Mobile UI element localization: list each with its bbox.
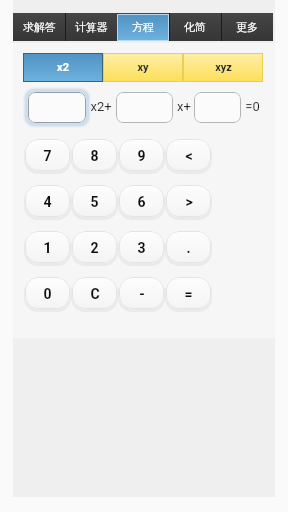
button[interactable]: xyz	[183, 53, 263, 82]
staticText: C	[90, 286, 100, 302]
staticText: 7	[43, 148, 52, 164]
button[interactable]	[28, 92, 86, 123]
button[interactable]: 计算器	[65, 13, 117, 41]
button[interactable]: 1	[25, 231, 70, 263]
staticText: =0	[245, 99, 260, 114]
button[interactable]: 化简	[169, 13, 221, 41]
button[interactable]	[194, 92, 241, 123]
button[interactable]: >	[166, 185, 211, 217]
button[interactable]: 3	[119, 231, 164, 263]
staticText: 计算器	[75, 20, 108, 34]
staticText: 更多	[236, 20, 258, 34]
staticText: 求解答	[23, 20, 56, 34]
button[interactable]: x2	[23, 53, 103, 82]
staticText: <	[185, 148, 193, 164]
button[interactable]: 5	[72, 185, 117, 217]
staticText: 4	[43, 194, 52, 210]
staticText: 1	[43, 240, 52, 256]
staticText: xyz	[215, 61, 232, 74]
button[interactable]: 6	[119, 185, 164, 217]
staticText: xy	[137, 61, 149, 74]
staticText: x2	[57, 61, 69, 74]
staticText: =	[184, 286, 193, 302]
staticText: 9	[137, 148, 146, 164]
staticText: .	[186, 240, 191, 256]
staticText: -	[139, 286, 145, 302]
button[interactable]: .	[166, 231, 211, 263]
button[interactable]: 2	[72, 231, 117, 263]
button[interactable]: 求解答	[13, 13, 65, 41]
button[interactable]: =	[166, 277, 211, 309]
button[interactable]: xy	[103, 53, 183, 82]
button[interactable]: 更多	[221, 13, 273, 41]
staticText: 5	[90, 194, 99, 210]
staticText: x+	[177, 99, 191, 114]
staticText: >	[185, 194, 193, 210]
staticText: 化简	[184, 20, 206, 34]
staticText: 2	[90, 240, 99, 256]
staticText: 3	[137, 240, 146, 256]
staticText: 方程	[132, 20, 154, 34]
button[interactable]	[116, 92, 173, 123]
button[interactable]: 0	[25, 277, 70, 309]
button[interactable]: 9	[119, 139, 164, 171]
staticText: x2+	[90, 99, 112, 114]
staticText: 8	[90, 148, 99, 164]
staticText: 6	[137, 194, 146, 210]
button[interactable]: -	[119, 277, 164, 309]
button[interactable]: 8	[72, 139, 117, 171]
button[interactable]: <	[166, 139, 211, 171]
button[interactable]: 方程	[117, 13, 169, 41]
button[interactable]: 7	[25, 139, 70, 171]
button[interactable]: 4	[25, 185, 70, 217]
staticText: 0	[43, 286, 52, 302]
button[interactable]: C	[72, 277, 117, 309]
